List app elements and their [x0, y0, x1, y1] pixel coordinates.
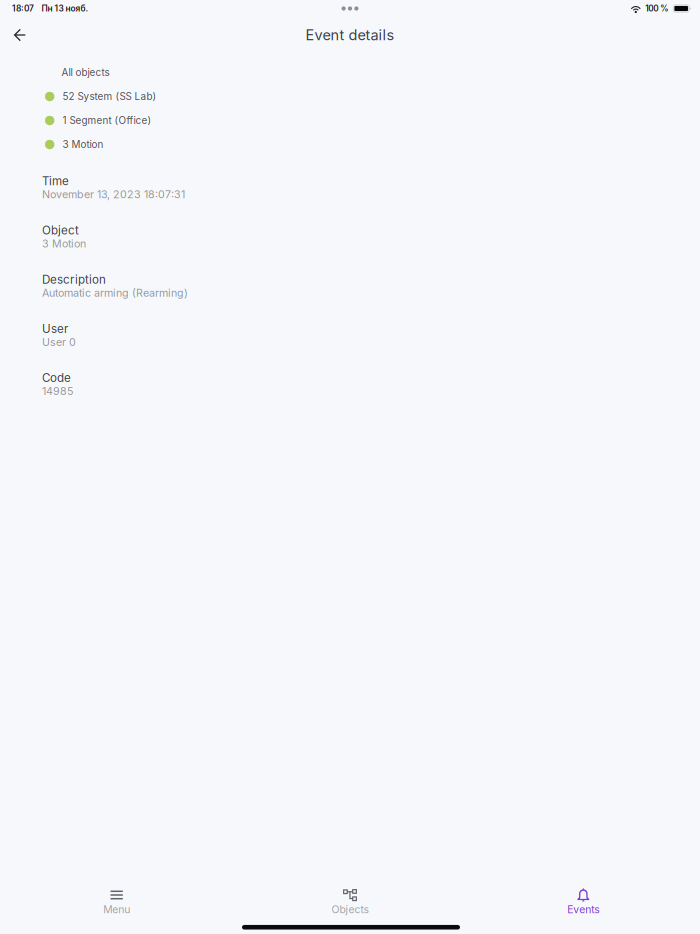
staticText: 3 Motion — [42, 237, 86, 250]
button[interactable]: Back — [3, 19, 35, 51]
staticText: 18:07 — [12, 3, 34, 14]
button[interactable]: Menu — [0, 875, 233, 920]
staticText: November 13, 2023 18:07:31 — [42, 188, 185, 201]
staticText: Time — [42, 174, 69, 188]
staticText: Menu — [103, 903, 130, 916]
staticText: 1 Segment (Office) — [62, 114, 151, 126]
staticText: User 0 — [42, 335, 76, 348]
staticText: Object — [42, 223, 79, 237]
staticText: 100 % — [645, 3, 668, 13]
staticText: User — [42, 322, 68, 336]
staticText: Automatic arming (Rearming) — [42, 286, 188, 299]
staticText: Objects — [331, 903, 368, 916]
staticText: 3 Motion — [62, 138, 103, 150]
staticText: Пн 13 нояб. — [41, 3, 88, 14]
staticText: 14985 — [42, 385, 73, 398]
button[interactable]: Events — [467, 875, 700, 920]
staticText: Code — [42, 371, 71, 385]
staticText: Event details — [305, 26, 394, 44]
staticText: All objects — [61, 66, 109, 78]
button[interactable]: Objects — [233, 875, 467, 920]
staticText: Description — [42, 272, 106, 286]
staticText: Events — [567, 903, 599, 916]
staticText: 52 System (SS Lab) — [62, 90, 156, 102]
